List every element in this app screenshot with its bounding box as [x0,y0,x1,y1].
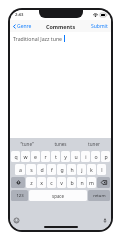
button[interactable]: p [101,151,110,162]
button[interactable]: u [71,151,80,162]
button[interactable]: m [87,177,96,188]
staticText: o [94,153,98,160]
staticText: m [89,179,94,186]
staticText: tunes [54,141,67,147]
staticText: z [30,179,33,186]
button[interactable]: Genre [10,20,36,32]
staticText: y [64,153,67,160]
button[interactable]: n [77,177,86,188]
button[interactable]: space [29,190,87,201]
staticText: p [104,153,108,160]
staticText: Genre [17,23,32,30]
staticText: h [70,166,74,173]
staticText: 123 [16,193,24,199]
button[interactable]: j [77,164,86,175]
staticText: q [14,153,18,160]
button[interactable]: Submit [88,20,111,32]
staticText: d [40,166,44,173]
button[interactable]: o [91,151,100,162]
button[interactable]: x [37,177,46,188]
staticText: t [55,153,57,160]
button[interactable]: Shift [11,177,25,188]
staticText: i [85,153,87,160]
button[interactable]: f [47,164,56,175]
staticText: Submit [91,23,108,30]
staticText: l [101,166,103,173]
button[interactable]: s [26,164,36,175]
button[interactable]: q [11,151,20,162]
staticText: Traditional Jazz tune [13,35,63,42]
button[interactable]: return [88,190,110,201]
button[interactable]: tunes [43,138,77,149]
button[interactable]: i [81,151,90,162]
button[interactable]: d [37,164,46,175]
staticText: space [52,193,64,199]
button[interactable]: v [57,177,66,188]
button[interactable]: t [51,151,60,162]
button[interactable]: h [67,164,76,175]
button[interactable]: g [57,164,66,175]
staticText: w [23,153,28,160]
button[interactable]: “tune” [10,138,43,149]
button[interactable]: y [61,151,70,162]
staticText: k [90,166,93,173]
button[interactable]: 123 [11,190,28,201]
staticText: r [44,153,47,160]
button[interactable]: tuner [77,138,111,149]
staticText: b [70,179,74,186]
staticText: j [81,166,83,173]
button[interactable]: e [31,151,40,162]
staticText: return [93,193,106,199]
staticText: u [74,153,78,160]
staticText: Comments [46,23,76,30]
staticText: 2:43 [15,12,24,18]
button[interactable]: w [21,151,30,162]
staticText: “tune” [20,141,34,147]
staticText: n [80,179,84,186]
button[interactable]: Emoji [13,217,19,223]
button[interactable]: r [41,151,50,162]
staticText: s [30,166,33,173]
button[interactable]: c [47,177,56,188]
staticText: v [60,179,63,186]
staticText: c [50,179,53,186]
button[interactable]: Backspace [97,177,110,188]
button[interactable]: l [97,164,106,175]
button[interactable]: k [87,164,96,175]
staticText: e [34,153,37,160]
staticText: x [40,179,43,186]
button[interactable]: Dictate [102,217,108,223]
button[interactable]: z [26,177,36,188]
button[interactable]: a [15,164,25,175]
button[interactable]: b [67,177,76,188]
staticText: tuner [88,141,100,147]
staticText: f [51,166,53,173]
staticText: g [60,166,64,173]
staticText: a [19,166,22,173]
